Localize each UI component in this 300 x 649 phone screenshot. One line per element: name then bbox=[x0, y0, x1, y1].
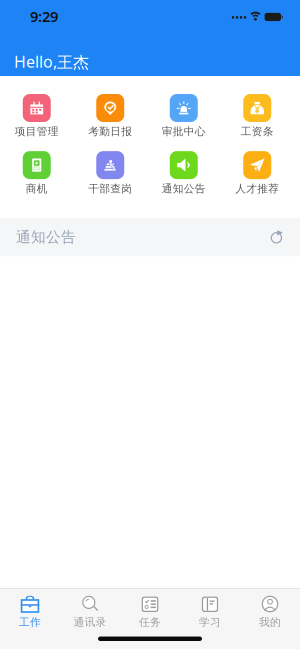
staticText: 考勤日报 bbox=[88, 125, 132, 138]
button[interactable]: 学习 bbox=[180, 594, 240, 629]
button[interactable]: 项目管理 bbox=[0, 94, 73, 138]
staticText: 9:29 bbox=[30, 7, 58, 26]
staticText: 项目管理 bbox=[15, 125, 59, 138]
staticText: 人才推荐 bbox=[235, 182, 279, 195]
staticText: 商机 bbox=[26, 182, 48, 195]
button[interactable]: 人才推荐 bbox=[220, 151, 294, 195]
button[interactable]: 刷新 bbox=[266, 226, 284, 248]
staticText: 工资条 bbox=[241, 125, 274, 138]
button[interactable]: 干部查岗 bbox=[73, 151, 147, 195]
staticText: 工作 bbox=[19, 616, 41, 629]
staticText: 通知公告 bbox=[162, 182, 206, 195]
staticText: 通讯录 bbox=[73, 616, 106, 629]
button[interactable]: 商机 bbox=[0, 151, 73, 195]
staticText: 学习 bbox=[199, 616, 221, 629]
button[interactable]: 我的 bbox=[240, 594, 300, 629]
staticText: 我的 bbox=[259, 616, 281, 629]
button[interactable]: 通讯录 bbox=[60, 594, 120, 629]
staticText: Hello,王杰 bbox=[14, 51, 89, 72]
staticText: 审批中心 bbox=[162, 125, 206, 138]
button[interactable]: 考勤日报 bbox=[73, 94, 147, 138]
button[interactable]: 工资条 bbox=[220, 94, 294, 138]
button[interactable]: 任务 bbox=[120, 594, 180, 629]
button[interactable]: 通知公告 bbox=[147, 151, 220, 195]
staticText: 通知公告 bbox=[16, 228, 76, 246]
staticText: 干部查岗 bbox=[88, 182, 132, 195]
staticText: 任务 bbox=[139, 616, 161, 629]
button[interactable]: 审批中心 bbox=[147, 94, 220, 138]
button[interactable]: 工作 bbox=[0, 594, 60, 629]
